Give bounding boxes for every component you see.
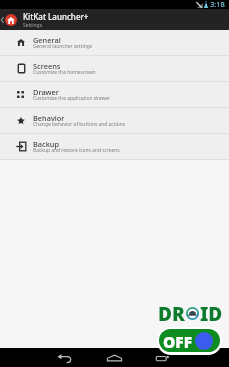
staticText: Screens <box>33 61 61 71</box>
staticText: Backup and restore icons and screens <box>33 147 120 154</box>
staticText: Change behavior of buttons and actions <box>33 121 126 128</box>
button[interactable]: Navigate up <box>0 9 5 30</box>
staticText: General launcher settings <box>33 43 93 50</box>
staticText: Drawer <box>33 87 59 97</box>
staticText: ID <box>200 301 223 327</box>
button[interactable]: Back <box>41 348 87 367</box>
staticText: 3:18 <box>210 0 225 8</box>
button[interactable]: Screens <box>0 56 229 82</box>
button[interactable]: Droid Off toggle <box>157 327 222 355</box>
staticText: Customize the homescreen <box>33 69 96 76</box>
staticText: General <box>33 35 61 45</box>
button[interactable]: Backup <box>0 134 229 160</box>
button[interactable]: Home <box>91 348 137 367</box>
staticText: Customize the application drawer <box>33 95 111 102</box>
staticText: OFF <box>163 331 193 352</box>
staticText: Behavior <box>33 113 65 123</box>
button[interactable]: Behavior <box>0 108 229 134</box>
staticText: DR <box>158 301 185 327</box>
button[interactable]: General <box>0 30 229 56</box>
button[interactable]: Recent apps <box>139 348 185 367</box>
staticText: KitKat Launcher+ <box>23 11 89 22</box>
staticText: Settings <box>23 22 43 29</box>
button[interactable]: Drawer <box>0 82 229 108</box>
staticText: Backup <box>33 139 60 149</box>
